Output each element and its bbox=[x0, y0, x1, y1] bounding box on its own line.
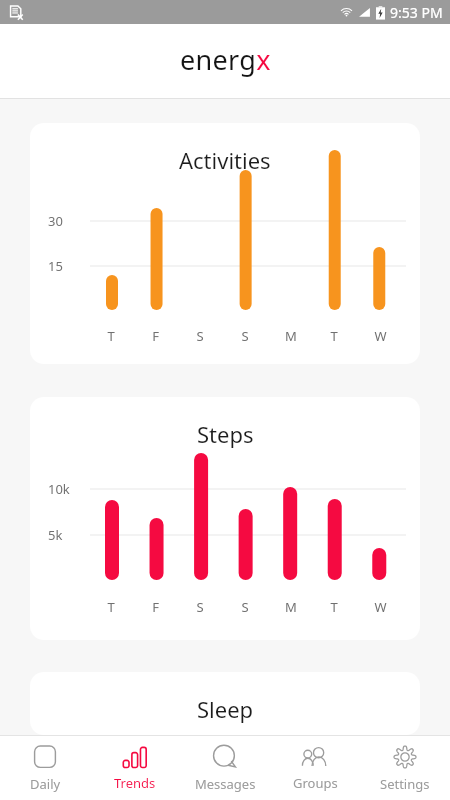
button[interactable]: Activities bbox=[30, 123, 420, 364]
button[interactable]: Settings bbox=[360, 736, 450, 800]
button[interactable]: Sleep bbox=[30, 672, 420, 735]
staticText: energx bbox=[180, 41, 271, 78]
staticText: F bbox=[152, 327, 159, 345]
staticText: Groups bbox=[293, 774, 338, 792]
staticText: 5k bbox=[48, 526, 63, 544]
staticText: T bbox=[330, 598, 338, 616]
staticText: 30 bbox=[48, 212, 63, 230]
button[interactable]: Daily bbox=[0, 736, 90, 800]
staticText: Daily bbox=[30, 775, 61, 793]
staticText: Sleep bbox=[197, 694, 254, 724]
other: Trends bbox=[122, 745, 148, 769]
other: Daily bbox=[32, 744, 58, 770]
staticText: W bbox=[374, 327, 387, 345]
staticText: W bbox=[374, 598, 387, 616]
button[interactable]: Groups bbox=[270, 736, 360, 800]
other: Messages bbox=[212, 744, 238, 770]
staticText: Activities bbox=[179, 145, 271, 175]
staticText: 10k bbox=[48, 480, 70, 498]
staticText: S bbox=[196, 327, 204, 345]
staticText: T bbox=[107, 327, 115, 345]
staticText: F bbox=[152, 598, 159, 616]
other: Settings bbox=[392, 744, 418, 770]
staticText: S bbox=[241, 598, 249, 616]
button[interactable]: Messages bbox=[180, 736, 270, 800]
staticText: M bbox=[285, 327, 297, 345]
staticText: S bbox=[196, 598, 204, 616]
staticText: T bbox=[107, 598, 115, 616]
staticText: Steps bbox=[197, 419, 254, 449]
staticText: 15 bbox=[48, 257, 63, 275]
other: Groups bbox=[300, 745, 330, 769]
staticText: 9:53 PM bbox=[390, 3, 443, 22]
staticText: M bbox=[285, 598, 297, 616]
button[interactable]: Steps bbox=[30, 397, 420, 640]
staticText: T bbox=[330, 327, 338, 345]
button[interactable]: Trends bbox=[90, 736, 180, 800]
staticText: Trends bbox=[114, 774, 156, 792]
staticText: S bbox=[241, 327, 249, 345]
staticText: Messages bbox=[195, 775, 256, 793]
staticText: Settings bbox=[380, 775, 430, 793]
